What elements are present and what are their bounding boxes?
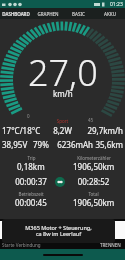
staticText: 01:23 bbox=[110, 1, 123, 8]
staticText: 17°C/18°C bbox=[2, 125, 46, 136]
staticText: 0,18km bbox=[17, 161, 45, 172]
staticText: Kilometerzähler bbox=[77, 155, 111, 161]
staticText: 00:00:37 bbox=[0, 176, 62, 187]
button[interactable]: Bluetooth connected bbox=[55, 177, 65, 187]
staticText: Total bbox=[88, 191, 99, 197]
staticText: 29,7km/h bbox=[79, 125, 123, 136]
staticText: 6236mAh bbox=[55, 139, 93, 150]
button[interactable]: M365 Motor + Steuerung, ca 8w im Leerlau… bbox=[2, 219, 115, 243]
staticText: 1906,50km bbox=[73, 161, 115, 172]
staticText: 0 bbox=[27, 113, 30, 119]
staticText: DASHBOARD bbox=[2, 11, 30, 17]
staticText: 45 bbox=[88, 117, 94, 123]
button[interactable]: AKKU bbox=[94, 8, 125, 19]
staticText: Trip bbox=[27, 155, 36, 161]
staticText: M365 Motor + Steuerung, ca 8w im Leerlau… bbox=[25, 224, 92, 238]
button[interactable]: GRAPHEN bbox=[32, 8, 63, 19]
button[interactable]: BASIC bbox=[63, 8, 94, 19]
staticText: GRAPHEN bbox=[37, 11, 59, 17]
button[interactable]: DASHBOARD bbox=[0, 8, 32, 19]
staticText: 1906,50km bbox=[73, 197, 115, 208]
staticText: 79% bbox=[33, 139, 55, 150]
staticText: 27,0 bbox=[28, 48, 98, 97]
staticText: BASIC bbox=[72, 11, 85, 17]
staticText: km/h bbox=[53, 88, 73, 99]
staticText: TRENNEN bbox=[100, 242, 121, 248]
button[interactable]: TRENNEN bbox=[98, 242, 123, 248]
staticText: 8,2W bbox=[46, 125, 79, 136]
staticText: Starte Verbindung bbox=[2, 242, 41, 248]
staticText: 35,6km bbox=[93, 139, 123, 150]
staticText: Betriebszeit bbox=[18, 191, 44, 197]
staticText: AKKU bbox=[104, 11, 116, 17]
staticText: 00:28:52 bbox=[62, 176, 125, 187]
staticText: 38,95V bbox=[2, 139, 33, 150]
staticText: Sport bbox=[0, 118, 125, 124]
staticText: 00:00:45 bbox=[15, 197, 47, 208]
